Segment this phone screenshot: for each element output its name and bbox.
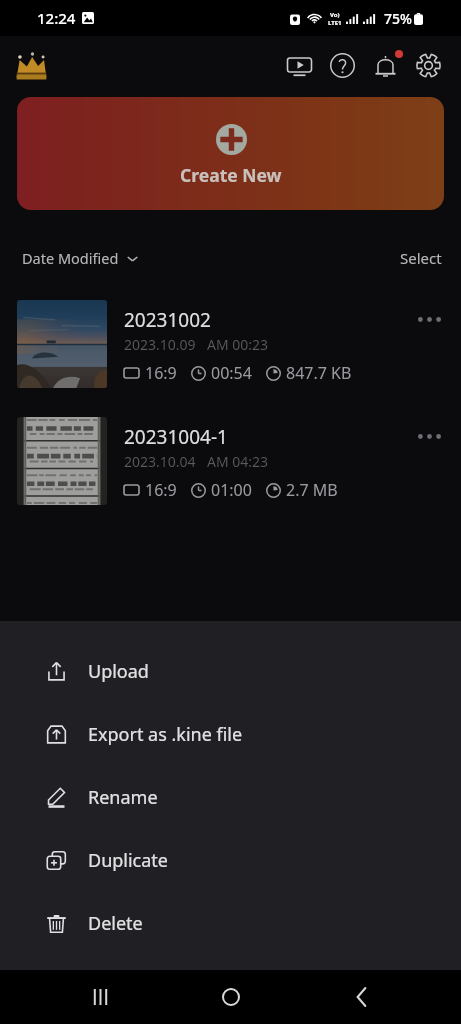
staticText: 75% [384, 9, 412, 28]
staticText: 2023.10.04 [124, 452, 196, 471]
button[interactable]: Select [381, 240, 461, 276]
staticText: 01:00 [211, 479, 252, 501]
button[interactable]: Premium [9, 44, 53, 88]
staticText: 847.7 KB [286, 362, 352, 384]
button[interactable]: 20231002 [0, 285, 461, 402]
staticText: 12:24 [37, 8, 76, 28]
staticText: Upload [88, 659, 149, 684]
staticText: Select [400, 248, 442, 268]
button[interactable]: Rename [0, 766, 461, 829]
button[interactable]: 20231004-1 [0, 402, 461, 519]
staticText: 16:9 [145, 479, 177, 501]
button[interactable]: Delete [0, 892, 461, 955]
button[interactable]: Tutorials [278, 44, 321, 87]
staticText: AM 00:23 [207, 335, 269, 354]
button[interactable]: Back [331, 970, 391, 1024]
staticText: 20231004-1 [124, 424, 228, 450]
staticText: Export as .kine file [88, 722, 243, 747]
button[interactable]: Export as .kine file [0, 703, 461, 766]
button[interactable]: Help [321, 44, 364, 87]
button[interactable]: Notifications [364, 44, 407, 87]
staticText: Duplicate [88, 848, 169, 873]
staticText: 20231002 [124, 307, 211, 333]
staticText: 2023.10.09 [124, 335, 196, 354]
staticText: 00:54 [211, 362, 252, 384]
button[interactable]: Settings [407, 44, 450, 87]
button[interactable]: Recents [70, 970, 130, 1024]
button[interactable]: Date Modified [0, 242, 148, 274]
staticText: Rename [88, 785, 158, 810]
button[interactable]: More options [407, 297, 451, 341]
staticText: 2.7 MB [286, 479, 338, 501]
staticText: Vo) [330, 11, 340, 19]
staticText: 16:9 [145, 362, 177, 384]
staticText: LTE1 [328, 19, 342, 27]
staticText: Date Modified [22, 248, 119, 268]
button[interactable]: Home [201, 970, 261, 1024]
button[interactable]: Create New [17, 97, 444, 210]
staticText: Create New [180, 163, 282, 187]
staticText: Delete [88, 911, 143, 936]
staticText: AM 04:23 [207, 452, 269, 471]
button[interactable]: Upload [0, 640, 461, 703]
button[interactable]: Duplicate [0, 829, 461, 892]
button[interactable]: More options [407, 414, 451, 458]
